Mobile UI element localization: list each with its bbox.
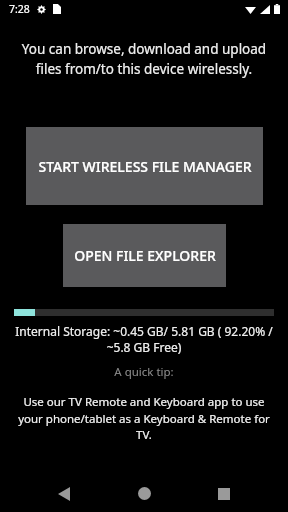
button[interactable]: OPEN FILE EXPLORER: [63, 224, 226, 287]
staticText: 7:28: [9, 2, 30, 16]
staticText: Internal Storage: ~0.45 GB/ 5.81 GB ( 92…: [14, 323, 274, 356]
button[interactable]: Back: [44, 475, 84, 512]
staticText: A quick tip:: [0, 364, 288, 380]
staticText: You can browse, download and upload file…: [10, 40, 278, 78]
button[interactable]: Home: [124, 475, 164, 512]
staticText: Use our TV Remote and Keyboard app to us…: [14, 394, 274, 442]
button[interactable]: Recent apps: [204, 475, 244, 512]
button[interactable]: START WIRELESS FILE MANAGER: [26, 127, 263, 205]
staticText: OPEN FILE EXPLORER: [74, 246, 216, 265]
staticText: START WIRELESS FILE MANAGER: [38, 157, 252, 176]
